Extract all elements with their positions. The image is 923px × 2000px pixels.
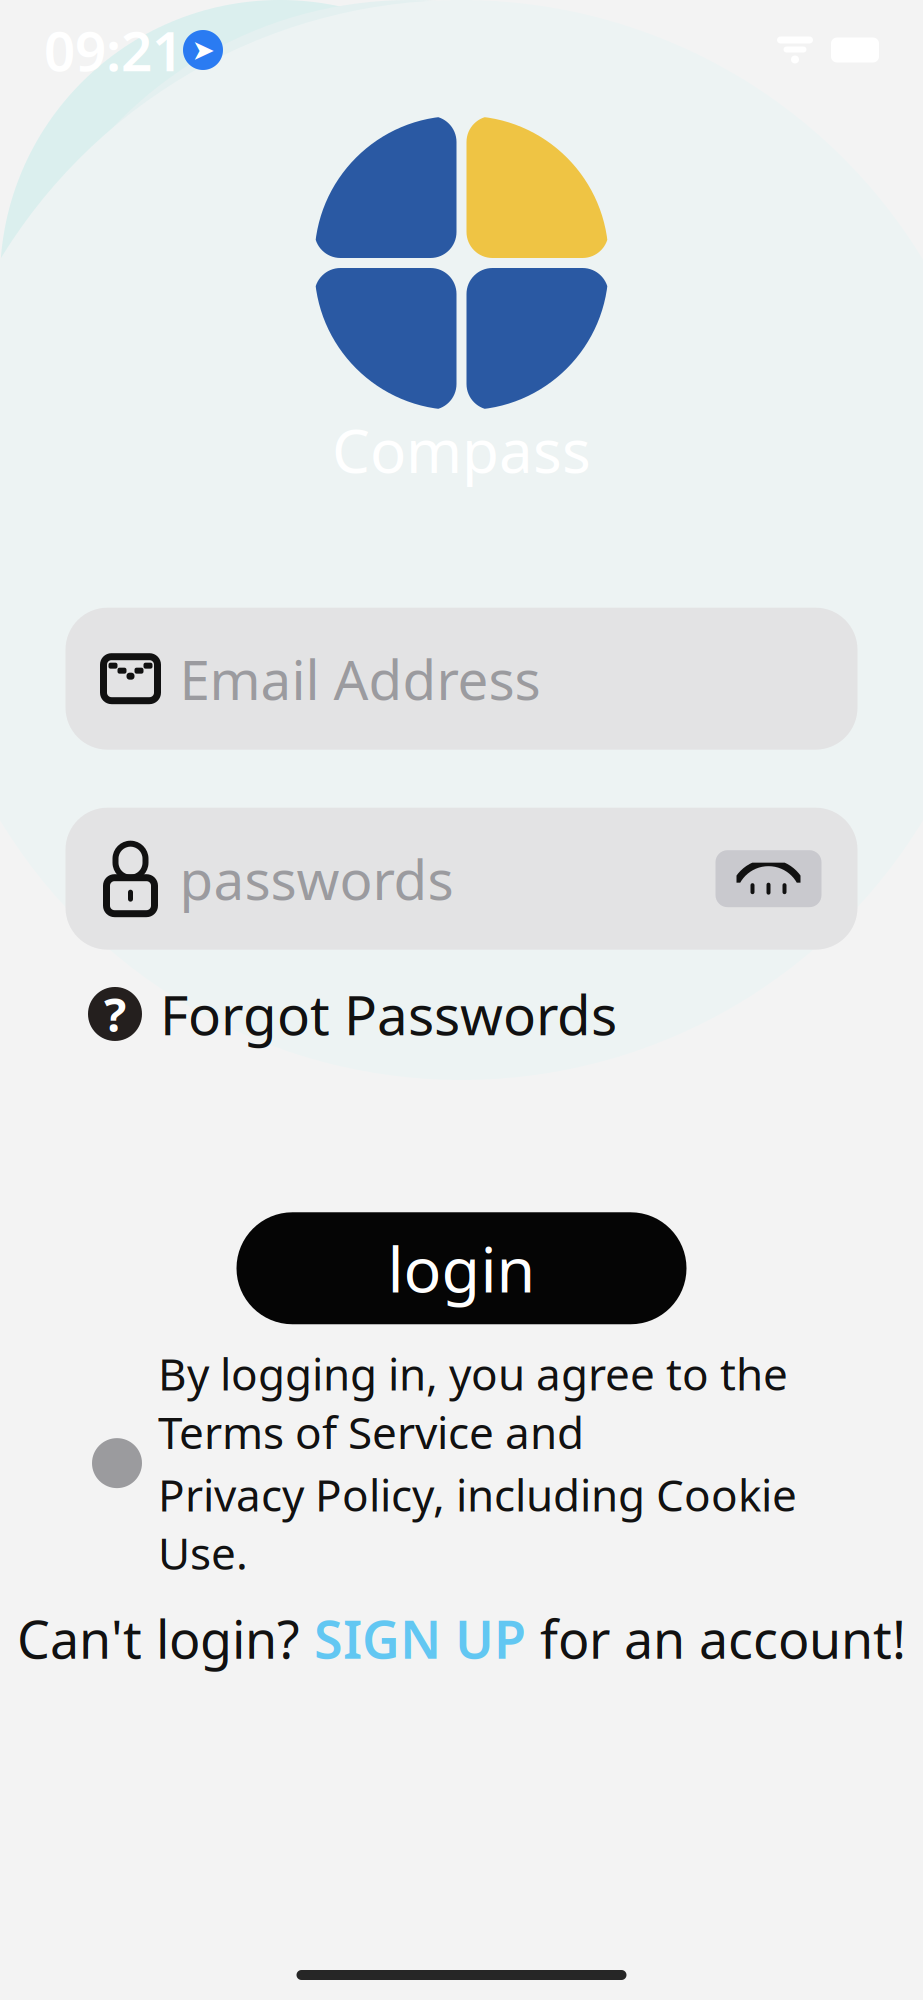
staticText: Compass (332, 410, 591, 490)
button[interactable]: Show password (715, 850, 821, 907)
staticText: for an account! (526, 1604, 906, 1673)
staticText: Forgot Passwords (160, 978, 617, 1050)
staticText: Can't login? (17, 1604, 314, 1673)
button[interactable]: SIGN UP (314, 1604, 526, 1673)
staticText: By logging in, you agree to the Terms of… (158, 1344, 788, 1461)
staticText: 09:21 (44, 14, 183, 86)
staticText: passwords (179, 842, 453, 915)
staticText: login (387, 1227, 535, 1310)
button[interactable]: login (236, 1212, 686, 1324)
staticText: ? (104, 983, 126, 1045)
staticText: SIGN UP (314, 1604, 526, 1673)
button[interactable]: Agree to terms (92, 1438, 142, 1488)
staticText: Email Address (179, 642, 540, 715)
button[interactable]: ? (88, 966, 617, 1062)
staticText: ➤ (191, 34, 214, 66)
staticText: Privacy Policy, including Cookie Use. (158, 1465, 797, 1582)
